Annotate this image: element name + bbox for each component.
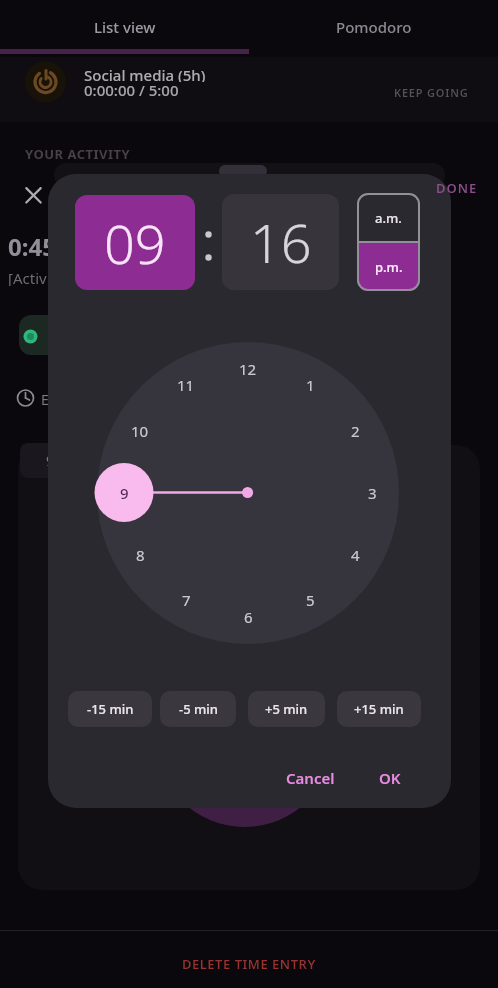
button[interactable]: -5 min [160, 691, 236, 727]
staticText: [Activity] [8, 268, 69, 286]
button[interactable]: Pomodoro [249, 8, 498, 46]
button[interactable]: -15 min [68, 691, 152, 727]
staticText: Entry [41, 390, 76, 407]
button[interactable]: 09 [75, 195, 195, 290]
staticText: 16 [250, 205, 312, 279]
button[interactable]: List view [0, 8, 249, 46]
staticText: 0:00:00 / 5:00 [84, 80, 179, 97]
staticText: -15 min [87, 700, 134, 718]
staticText: Cancel [286, 768, 335, 788]
staticText: DONE [436, 179, 478, 197]
staticText: -5 min [179, 700, 218, 718]
button[interactable]: OK [358, 762, 422, 794]
staticText: 9 [120, 483, 129, 503]
button[interactable]: +15 min [337, 691, 421, 727]
staticText: Pomodoro [336, 17, 412, 37]
button[interactable]: 16 [222, 194, 339, 290]
staticText: +5 min [265, 700, 308, 718]
button[interactable]: DELETE TIME ENTRY [140, 950, 358, 978]
button[interactable] [0, 57, 498, 122]
staticText: YOUR ACTIVITY [25, 145, 131, 161]
staticText: 3 [368, 483, 377, 503]
staticText: 0:45:35 [8, 230, 91, 256]
staticText: Social media (5h) [84, 65, 206, 82]
staticText: 7 [182, 590, 191, 610]
button[interactable]: p.m. [357, 242, 420, 291]
staticText: OK [379, 768, 401, 788]
staticText: 4 [351, 545, 360, 565]
button[interactable]: DONE [429, 176, 485, 200]
staticText: +15 min [354, 700, 404, 718]
staticText: 10 [131, 421, 149, 441]
staticText: List view [94, 17, 156, 37]
staticText: 1 [306, 375, 315, 395]
staticText: p.m. [375, 258, 403, 276]
staticText: 11 [177, 375, 195, 395]
staticText: 8 [136, 545, 145, 565]
button[interactable] [22, 184, 45, 207]
staticText: 9 [46, 451, 55, 470]
staticText: 12 [239, 359, 257, 379]
staticText: a.m. [375, 209, 402, 227]
staticText: KEEP GOING [394, 85, 469, 100]
staticText: 6 [244, 607, 253, 627]
button[interactable]: +5 min [248, 691, 325, 727]
staticText: 09 [104, 206, 166, 280]
staticText: 5 [306, 590, 315, 610]
button[interactable]: Cancel [270, 762, 350, 794]
staticText: DELETE TIME ENTRY [182, 955, 316, 973]
button[interactable]: a.m. [357, 193, 420, 242]
staticText: 2 [351, 421, 360, 441]
